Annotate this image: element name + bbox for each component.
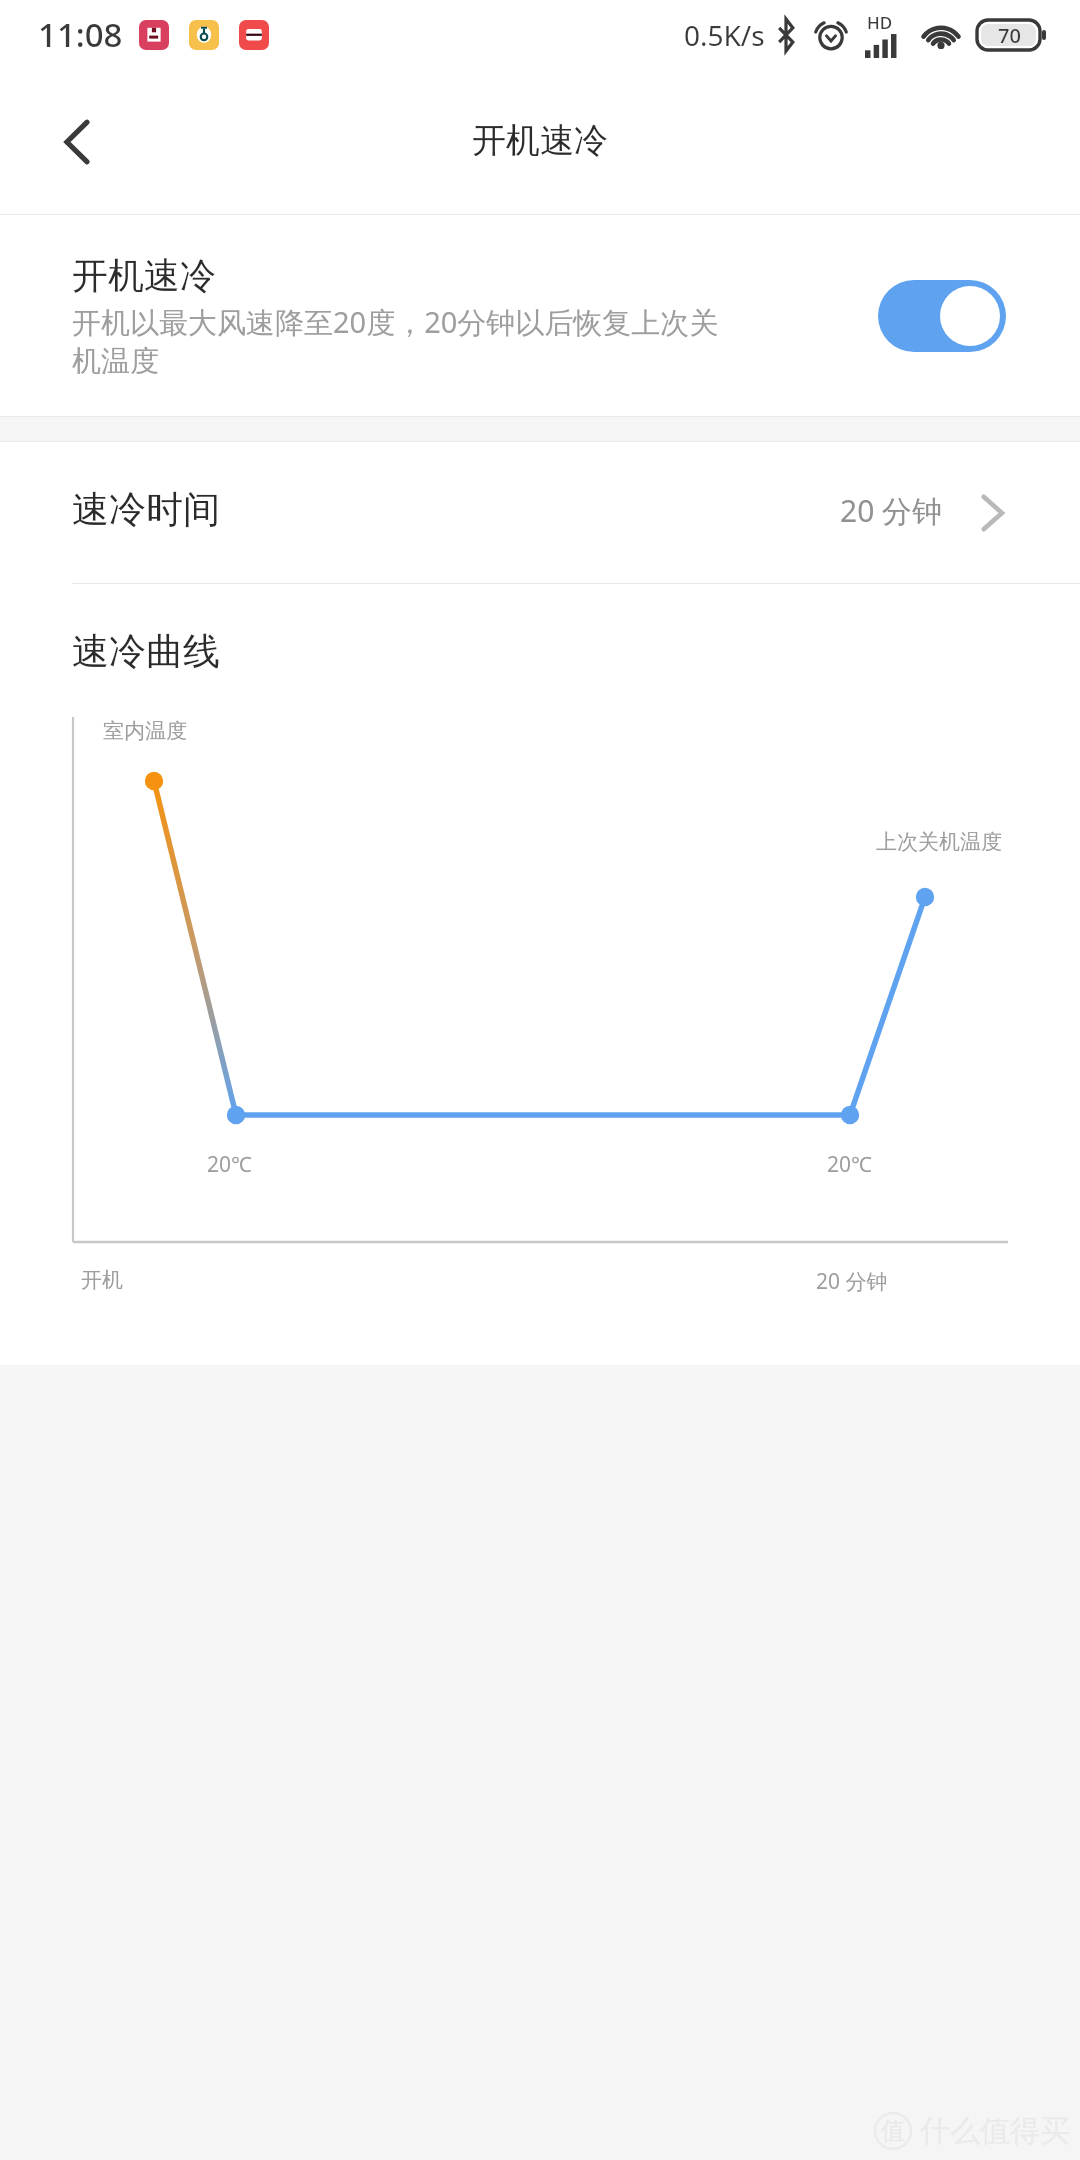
staticText: 0.5K/s	[684, 16, 765, 54]
staticText: 速冷时间	[72, 486, 220, 533]
staticText: 上次关机温度	[876, 829, 1002, 855]
staticText: 70	[998, 22, 1021, 49]
staticText: 开机速冷	[72, 253, 216, 298]
button[interactable]: 开机速冷	[0, 215, 1080, 416]
staticText: HD	[867, 11, 893, 34]
staticText: 20℃	[827, 1150, 872, 1179]
button[interactable]: Back	[29, 94, 125, 190]
staticText: 20℃	[207, 1150, 252, 1179]
staticText: 开机	[81, 1267, 123, 1293]
staticText: 室内温度	[103, 718, 187, 744]
staticText: 11:08	[38, 12, 123, 57]
staticText: 20 分钟	[816, 1267, 888, 1296]
staticText: 开机速冷	[472, 119, 608, 162]
staticText: 开机以最大风速降至20度，20分钟以后恢复上次关机温度	[72, 302, 740, 380]
staticText: 什么值得买	[920, 2112, 1070, 2150]
button[interactable]: Toggle boot fast cooling	[878, 280, 1006, 352]
staticText: 值	[881, 2116, 905, 2146]
button[interactable]: 速冷时间	[0, 442, 1080, 583]
staticText: 20 分钟	[840, 490, 943, 531]
staticText: 速冷曲线	[72, 628, 220, 675]
